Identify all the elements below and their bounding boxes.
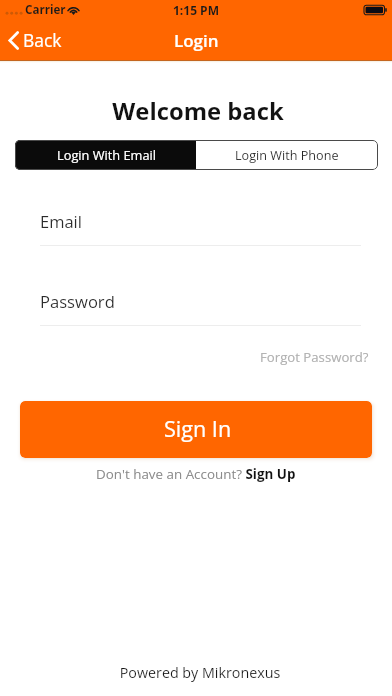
button[interactable]: Back [0,23,74,57]
staticText: Back [23,28,62,52]
button[interactable]: Forgot Password? [256,344,373,370]
staticText: Password [40,290,115,313]
staticText: Don't have an Account? Sign Up [96,465,296,483]
button[interactable]: Password [40,287,361,326]
button[interactable]: Email [40,207,361,246]
staticText: Sign In [164,414,232,443]
other: Wi-Fi [67,4,80,16]
staticText: 1:15 PM [173,2,219,18]
staticText: Powered by Mikronexus [4,663,392,682]
staticText: Welcome back [2,95,392,127]
staticText: Carrier [25,2,66,18]
staticText: Login With Phone [235,146,339,163]
button[interactable]: Login With Email [15,140,196,170]
staticText: Forgot Password? [260,348,369,366]
staticText: Login [174,29,219,52]
button[interactable]: Sign In [20,401,372,458]
staticText: Login With Email [57,146,157,163]
button[interactable]: Don't have an Account? Sign Up [90,462,302,486]
staticText: Email [40,210,82,232]
button[interactable]: Login With Phone [196,140,378,170]
